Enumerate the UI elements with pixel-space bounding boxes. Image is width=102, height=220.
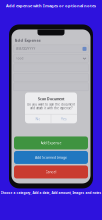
button[interactable]: No bbox=[25, 114, 51, 123]
staticText: Yes bbox=[61, 116, 67, 121]
staticText: Food bbox=[15, 56, 23, 60]
button[interactable]: Cancel bbox=[14, 165, 88, 178]
button[interactable]: MM/DD/YYYY bbox=[13, 45, 88, 53]
staticText: Cancel bbox=[45, 170, 56, 174]
button[interactable]: Add Expense bbox=[14, 136, 88, 149]
button[interactable]: Food bbox=[13, 54, 88, 62]
staticText: Add Expense bbox=[14, 37, 40, 43]
staticText: No bbox=[35, 116, 40, 121]
staticText: Choose a category, Add a date, Add amoun… bbox=[0, 191, 101, 195]
button[interactable]: Yes bbox=[51, 114, 77, 123]
staticText: Add expense with Images or optional note… bbox=[6, 3, 96, 8]
staticText: Add Scanned Image bbox=[35, 155, 67, 160]
staticText: MM/DD/YYYY bbox=[15, 47, 35, 51]
staticText: Do you want to scan the document and att… bbox=[27, 103, 75, 110]
button[interactable]: Add Scanned Image bbox=[14, 151, 88, 164]
staticText: Scan Document bbox=[38, 96, 64, 101]
staticText: Add Expense bbox=[40, 141, 61, 145]
